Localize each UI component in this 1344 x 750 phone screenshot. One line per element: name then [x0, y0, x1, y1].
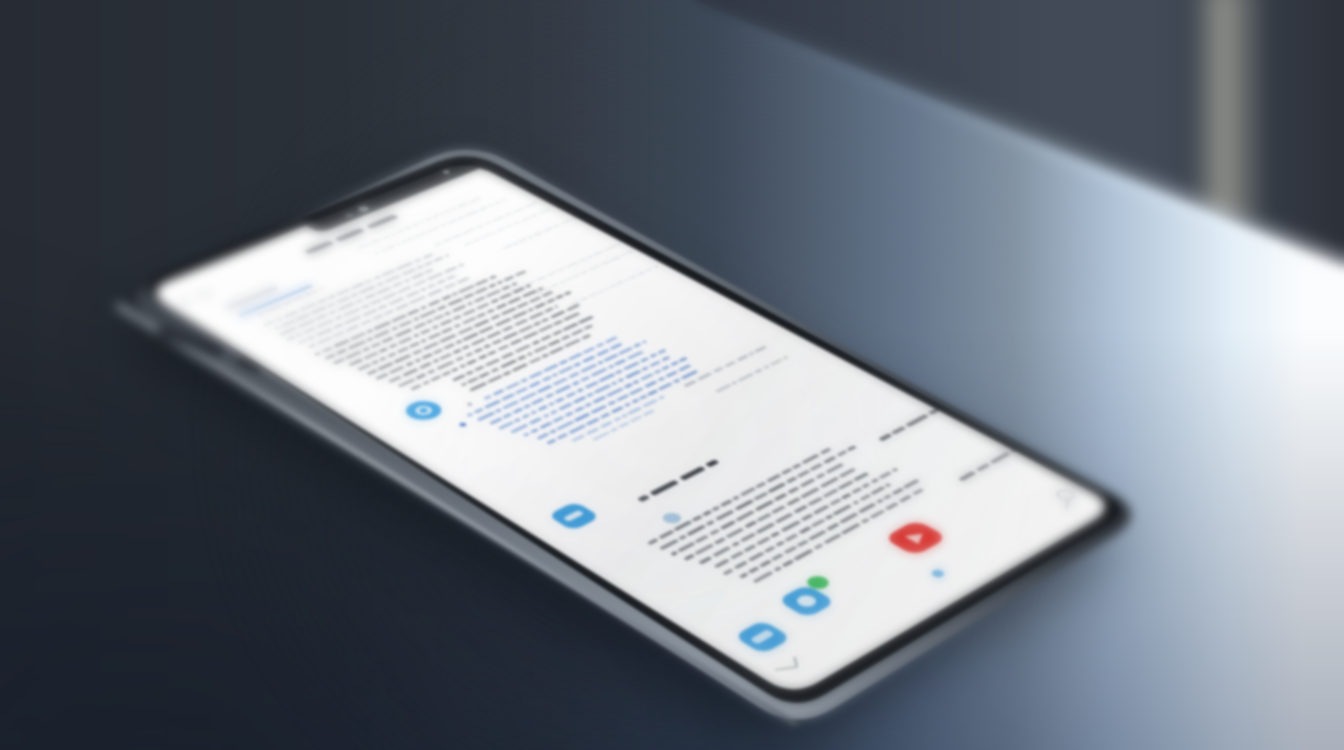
button[interactable]: Smartphone showing an article screen — [0, 0, 1344, 750]
